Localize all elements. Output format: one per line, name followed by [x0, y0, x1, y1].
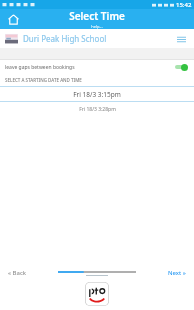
staticText: leave gaps between bookings: [5, 64, 75, 71]
button[interactable]: Next »: [166, 267, 188, 279]
staticText: 15:42: [176, 1, 192, 9]
button[interactable]: Fri 18/3 3:28pm: [0, 102, 194, 116]
button[interactable]: Duri Peak High School: [0, 29, 194, 48]
staticText: Fri 18/3 3:28pm: [79, 106, 116, 113]
staticText: Fri 18/3 3:15pm: [73, 90, 121, 99]
staticText: help...: [91, 24, 103, 29]
button[interactable]: PTO app icon: [85, 282, 109, 306]
staticText: SELECT A STARTING DATE AND TIME: [5, 77, 82, 83]
staticText: Select Time: [69, 9, 125, 23]
staticText: « Back: [8, 269, 26, 277]
staticText: Duri Peak High School: [23, 33, 107, 44]
button[interactable]: Menu: [173, 31, 189, 47]
button[interactable]: « Back: [6, 267, 28, 279]
button[interactable]: Fri 18/3 3:15pm: [0, 87, 194, 101]
button[interactable]: leave gaps between bookings: [0, 60, 194, 74]
staticText: Next »: [168, 269, 186, 277]
button[interactable]: Home: [4, 10, 22, 28]
